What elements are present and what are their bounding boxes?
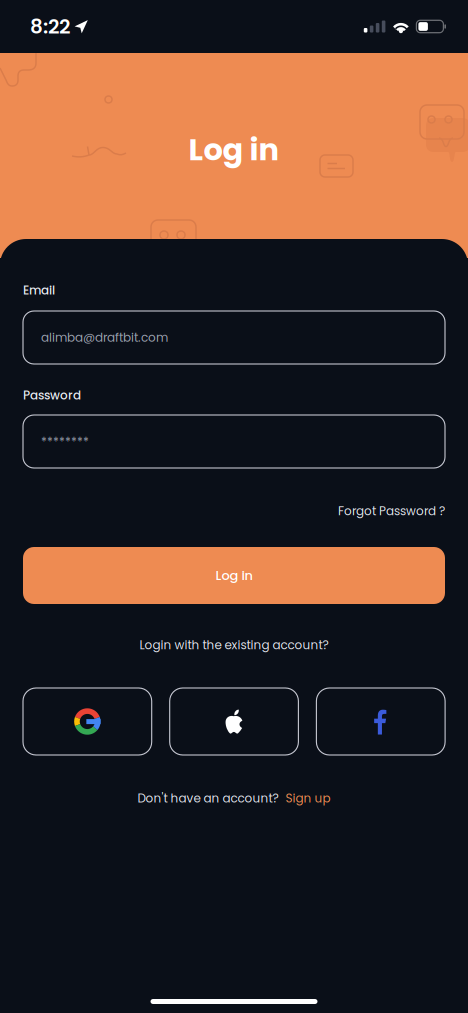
button[interactable]: Log in [23, 547, 445, 604]
staticText: Password [23, 387, 81, 404]
staticText: Don't have an account? [137, 790, 278, 807]
button[interactable]: Sign in with Google [23, 688, 152, 755]
staticText: Sign up [285, 790, 330, 807]
staticText: Forgot Password ? [338, 503, 445, 519]
staticText: Log in [188, 128, 279, 171]
button[interactable]: Sign up [278, 786, 330, 811]
staticText: ******** [41, 433, 89, 450]
staticText: alimba@draftbit.com [41, 329, 168, 346]
staticText: Log in [215, 566, 252, 585]
button[interactable]: Sign in with Apple [170, 688, 298, 755]
staticText: Email [23, 282, 55, 299]
button[interactable]: Sign in with Facebook [316, 688, 445, 755]
button[interactable]: Forgot Password ? [23, 494, 445, 528]
staticText: 8:22 [30, 12, 70, 40]
staticText: Login with the existing account? [139, 637, 328, 653]
